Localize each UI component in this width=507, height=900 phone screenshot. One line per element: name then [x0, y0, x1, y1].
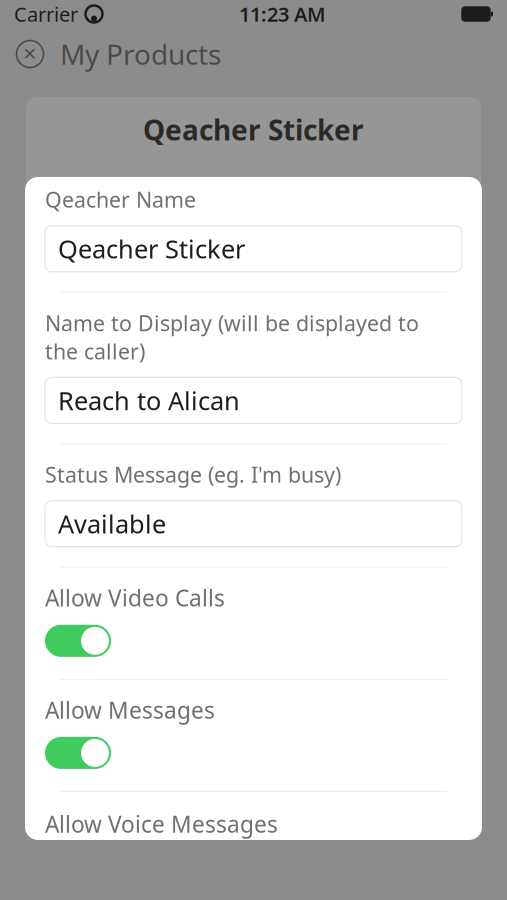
button[interactable]: Allow Video Calls: [45, 625, 111, 657]
staticText: 11:23 AM: [239, 1, 326, 27]
button[interactable]: Close: [14, 38, 46, 70]
staticText: Qeacher Settings: [151, 121, 355, 154]
staticText: ✕: [22, 44, 37, 64]
staticText: Allow Messages: [45, 695, 215, 725]
staticText: Qeacher Sticker: [143, 111, 364, 148]
staticText: Allow Video Calls: [45, 583, 225, 613]
staticText: Qeacher Name: [45, 185, 196, 214]
staticText: Reach to Alican: [58, 384, 240, 417]
staticText: Name to Display (will be displayed to th…: [45, 309, 419, 365]
staticText: Allow Voice Messages: [45, 809, 278, 839]
staticText: Qeacher Sticker: [58, 232, 245, 265]
button[interactable]: Allow Messages: [45, 737, 111, 769]
staticText: Available: [58, 507, 166, 540]
staticText: Status Message (eg. I'm busy): [45, 460, 341, 489]
staticText: Carrier: [14, 1, 78, 27]
staticText: My Products: [60, 35, 221, 73]
